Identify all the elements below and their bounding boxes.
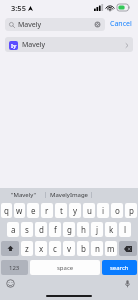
staticText: u [87,205,92,216]
button[interactable]: o [111,203,123,218]
staticText: search [110,264,129,272]
button[interactable]: k [105,222,117,237]
button[interactable]: a [7,222,19,237]
staticText: 123 [9,264,20,272]
staticText: b [81,243,86,254]
button[interactable]: t [55,203,67,218]
button[interactable]: y [69,203,81,218]
staticText: p [129,205,134,216]
button[interactable]: Shift [1,241,19,256]
button[interactable]: MavelyImage [46,188,92,201]
button[interactable]: space [30,260,100,275]
staticText: o [115,205,120,216]
staticText: Mavely [18,20,42,30]
button[interactable]: p [125,203,137,218]
staticText: k [109,224,114,235]
staticText: v [67,243,72,254]
button[interactable]: d [35,222,47,237]
button[interactable]: Backspace [119,241,137,256]
button[interactable]: Emoji [6,279,15,288]
button[interactable]: ly [5,37,133,52]
button[interactable]: v [63,241,75,256]
staticText: MavelyImage [50,191,88,199]
staticText: ly [11,42,17,50]
staticText: d [39,224,44,235]
button[interactable]: g [63,222,75,237]
button[interactable]: e [27,203,39,218]
button[interactable]: Mavely [5,18,105,31]
staticText: x [39,243,44,254]
button[interactable]: c [49,241,61,256]
button[interactable]: search [102,260,137,275]
button[interactable]: j [91,222,103,237]
button[interactable]: i [97,203,109,218]
button[interactable]: w [14,203,25,218]
staticText: c [53,243,57,254]
button[interactable]: Cancel [109,17,133,31]
staticText: Cancel [110,19,132,29]
button[interactable]: Clear text [94,21,101,28]
button[interactable]: x [35,241,47,256]
button[interactable]: n [91,241,103,256]
staticText: e [31,205,36,216]
staticText: t [60,205,63,216]
staticText: s [25,224,29,235]
button[interactable]: h [77,222,89,237]
staticText: "Mavely" [11,191,36,199]
button[interactable]: b [77,241,89,256]
button[interactable]: s [21,222,33,237]
staticText: g [67,224,72,235]
staticText: i [102,205,105,216]
staticText: a [11,224,16,235]
button[interactable]: z [21,241,33,256]
button[interactable]: "Mavely" [0,188,46,201]
staticText: r [45,205,49,216]
button[interactable]: q [1,203,12,218]
staticText: y [73,205,78,216]
staticText: j [96,224,99,235]
button[interactable]: l [119,222,131,237]
staticText: m [107,243,115,254]
staticText: q [4,205,9,216]
staticText: n [95,243,100,254]
button[interactable]: Dictate [123,279,132,288]
button[interactable]: f [49,222,61,237]
staticText: l [124,224,127,235]
staticText: h [81,224,86,235]
button[interactable]: u [83,203,95,218]
staticText: f [54,224,57,235]
staticText: z [25,243,29,254]
button[interactable]: r [41,203,53,218]
staticText: space [57,264,74,272]
staticText: w [16,205,23,216]
button[interactable]: 123 [1,260,28,275]
staticText: 3:55 [11,3,26,13]
staticText: Mavely [22,40,46,50]
button[interactable]: m [105,241,117,256]
